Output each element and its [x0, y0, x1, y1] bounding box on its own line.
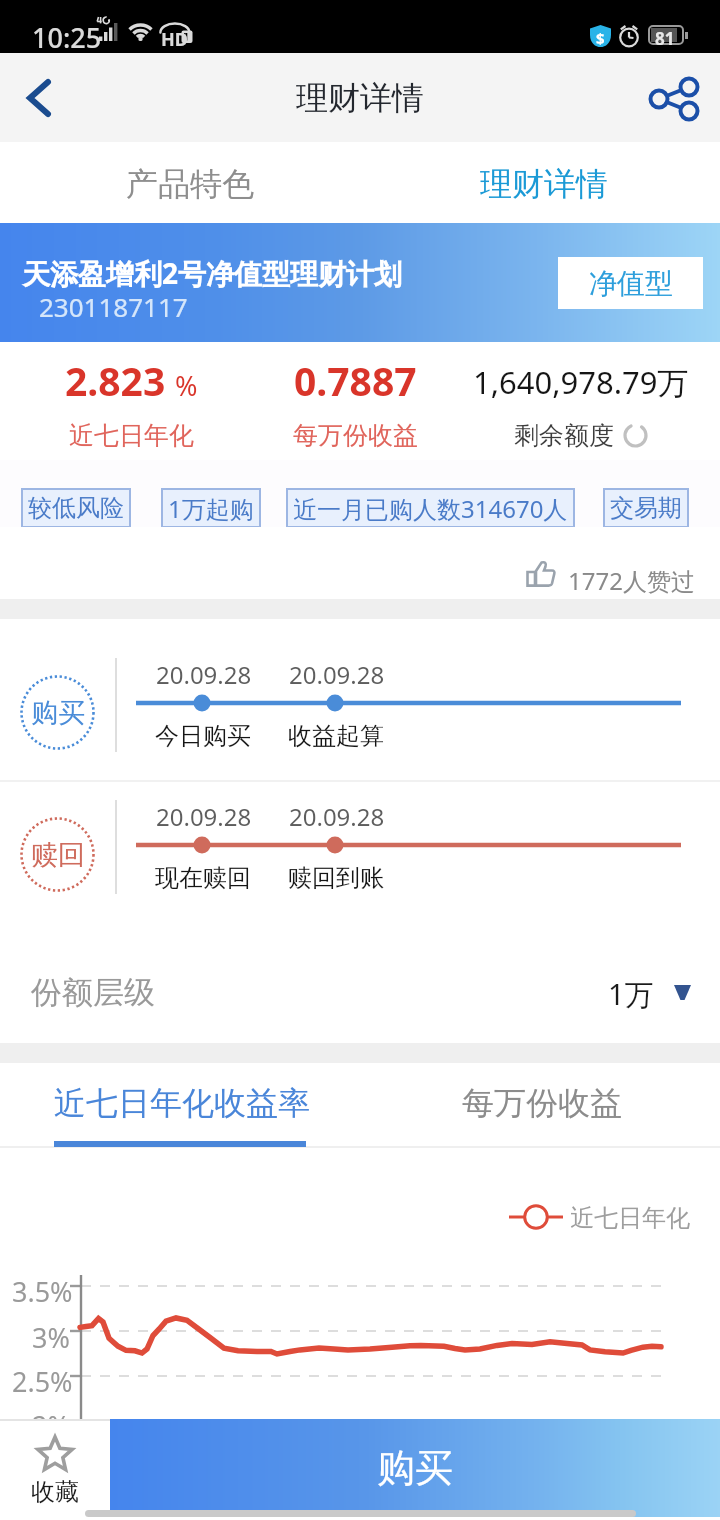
staticText: 收益起算: [288, 721, 384, 751]
button[interactable]: 近一月已购人数314670人: [286, 488, 575, 528]
staticText: 理财详情: [296, 78, 424, 118]
staticText: 收藏: [31, 1477, 79, 1507]
staticText: 天添盈增利2号净值型理财计划: [22, 254, 403, 292]
staticText: 3%: [32, 1319, 70, 1356]
staticText: 20.09.28: [156, 658, 252, 691]
staticText: 每万份收益: [293, 420, 418, 451]
button[interactable]: 较低风险: [21, 488, 131, 528]
staticText: 理财详情: [480, 164, 608, 204]
staticText: 每万份收益: [462, 1083, 622, 1123]
button[interactable]: Like: [518, 539, 645, 601]
staticText: 产品特色: [126, 164, 254, 204]
staticText: 3.5%: [12, 1273, 73, 1310]
staticText: 20.09.28: [156, 800, 252, 833]
button[interactable]: 购买: [110, 1419, 720, 1517]
button[interactable]: 1万起购: [161, 488, 261, 528]
button[interactable]: [0, 1063, 360, 1148]
staticText: 近七日年化收益率: [54, 1083, 310, 1123]
staticText: 近七日年化: [69, 420, 194, 451]
button[interactable]: [0, 941, 720, 1043]
staticText: 1万起购: [168, 492, 254, 525]
staticText: 净值型: [589, 266, 673, 301]
staticText: $: [596, 28, 605, 48]
staticText: %: [175, 367, 198, 404]
staticText: 赎回到账: [288, 863, 384, 893]
staticText: 20.09.28: [289, 658, 385, 691]
staticText: 1772人赞过: [568, 564, 695, 597]
staticText: 赎回: [31, 838, 85, 872]
button[interactable]: 产品特色: [0, 145, 360, 223]
staticText: 交易期: [610, 493, 682, 523]
button[interactable]: 理财详情: [360, 145, 720, 223]
staticText: 2%: [32, 1407, 70, 1444]
button[interactable]: [360, 1063, 720, 1148]
staticText: 2301187117: [39, 289, 188, 324]
button[interactable]: 净值型: [558, 257, 703, 309]
staticText: 10:25: [32, 19, 102, 56]
button[interactable]: 交易期: [603, 488, 689, 528]
staticText: 20.09.28: [289, 800, 385, 833]
staticText: 购买: [31, 696, 85, 730]
staticText: HD: [161, 27, 188, 52]
staticText: 2.5%: [12, 1363, 73, 1400]
staticText: 近七日年化: [570, 1203, 690, 1233]
staticText: 1,640,978.79万: [473, 361, 689, 403]
button[interactable]: Share: [630, 53, 720, 142]
staticText: 2.823: [65, 354, 166, 407]
staticText: 较低风险: [28, 493, 124, 523]
staticText: 今日购买: [155, 721, 251, 751]
staticText: 0.7887: [294, 354, 417, 407]
staticText: 剩余额度: [514, 420, 614, 451]
staticText: 现在赎回: [155, 863, 251, 893]
staticText: 1万: [608, 974, 654, 1014]
staticText: 购买: [377, 1444, 453, 1492]
button[interactable]: Back: [0, 53, 78, 142]
staticText: 近一月已购人数314670人: [293, 492, 568, 525]
staticText: 81: [655, 27, 675, 50]
button[interactable]: 收藏: [0, 1419, 110, 1517]
staticText: 份额层级: [31, 973, 155, 1012]
